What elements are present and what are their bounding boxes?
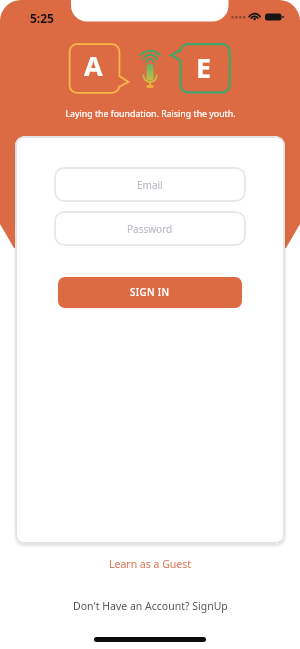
staticText: 5:25 (30, 10, 54, 26)
button[interactable]: Don't Have an Account? SignUp (0, 595, 300, 617)
staticText: Email (137, 178, 163, 192)
button[interactable]: Email (54, 167, 246, 202)
staticText: Password (127, 222, 173, 236)
staticText: A (84, 47, 103, 83)
staticText: SIGN IN (130, 286, 170, 299)
button[interactable]: SIGN IN (58, 277, 242, 308)
staticText: Don't Have an Account? SignUp (73, 599, 228, 613)
button[interactable]: Learn as a Guest (0, 553, 300, 575)
staticText: Learn as a Guest (109, 557, 192, 571)
staticText: Laying the foundation. Raising the youth… (65, 108, 236, 120)
staticText: E (196, 49, 212, 85)
button[interactable]: Password (54, 211, 246, 246)
